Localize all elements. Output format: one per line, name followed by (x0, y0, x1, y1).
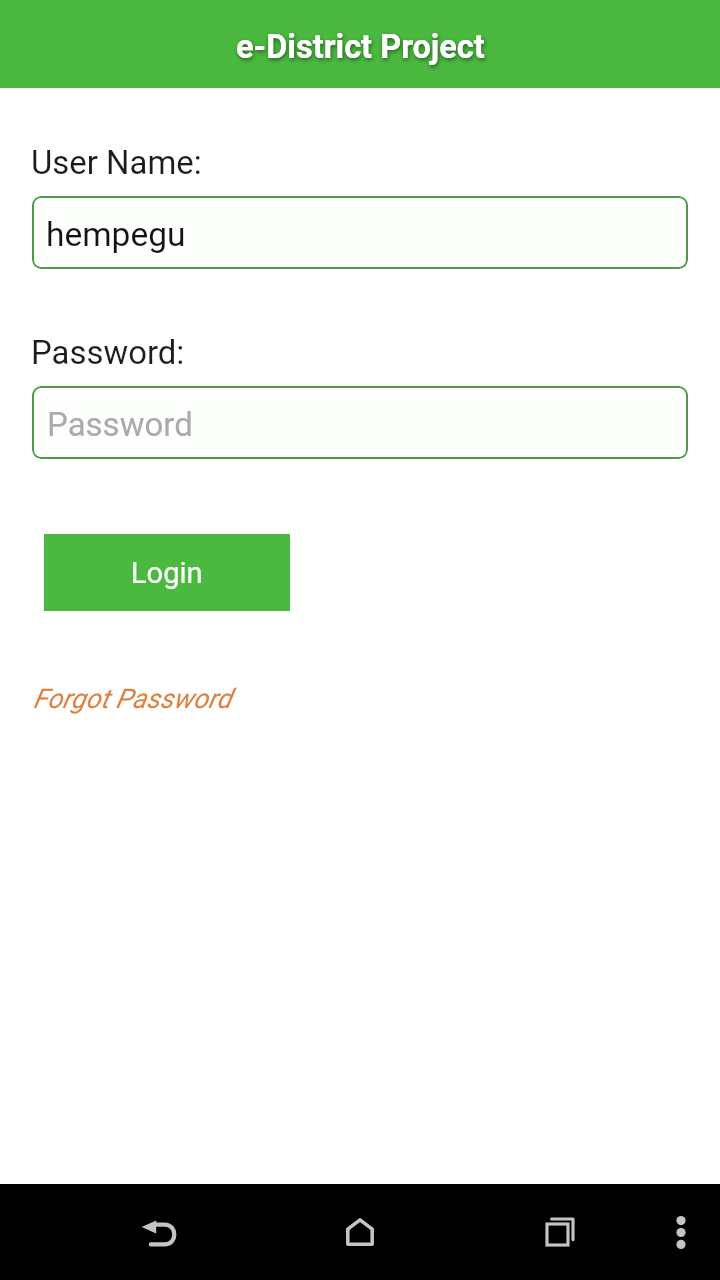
button[interactable]: More options (641, 1184, 720, 1280)
button[interactable]: Login (44, 534, 290, 611)
staticText: e-District Project (236, 28, 485, 66)
button[interactable]: Forgot Password (33, 683, 239, 718)
button[interactable]: Home (280, 1184, 440, 1280)
button[interactable]: Password (32, 386, 688, 459)
staticText: hempegu (46, 215, 186, 254)
staticText: Forgot Password (33, 683, 232, 715)
button[interactable]: hempegu (32, 196, 688, 269)
button[interactable]: Recent apps (480, 1184, 640, 1280)
staticText: Password (47, 405, 193, 444)
staticText: User Name: (31, 143, 202, 182)
staticText: Password: (31, 333, 185, 372)
button[interactable]: Back (80, 1184, 240, 1280)
staticText: Login (131, 556, 203, 590)
